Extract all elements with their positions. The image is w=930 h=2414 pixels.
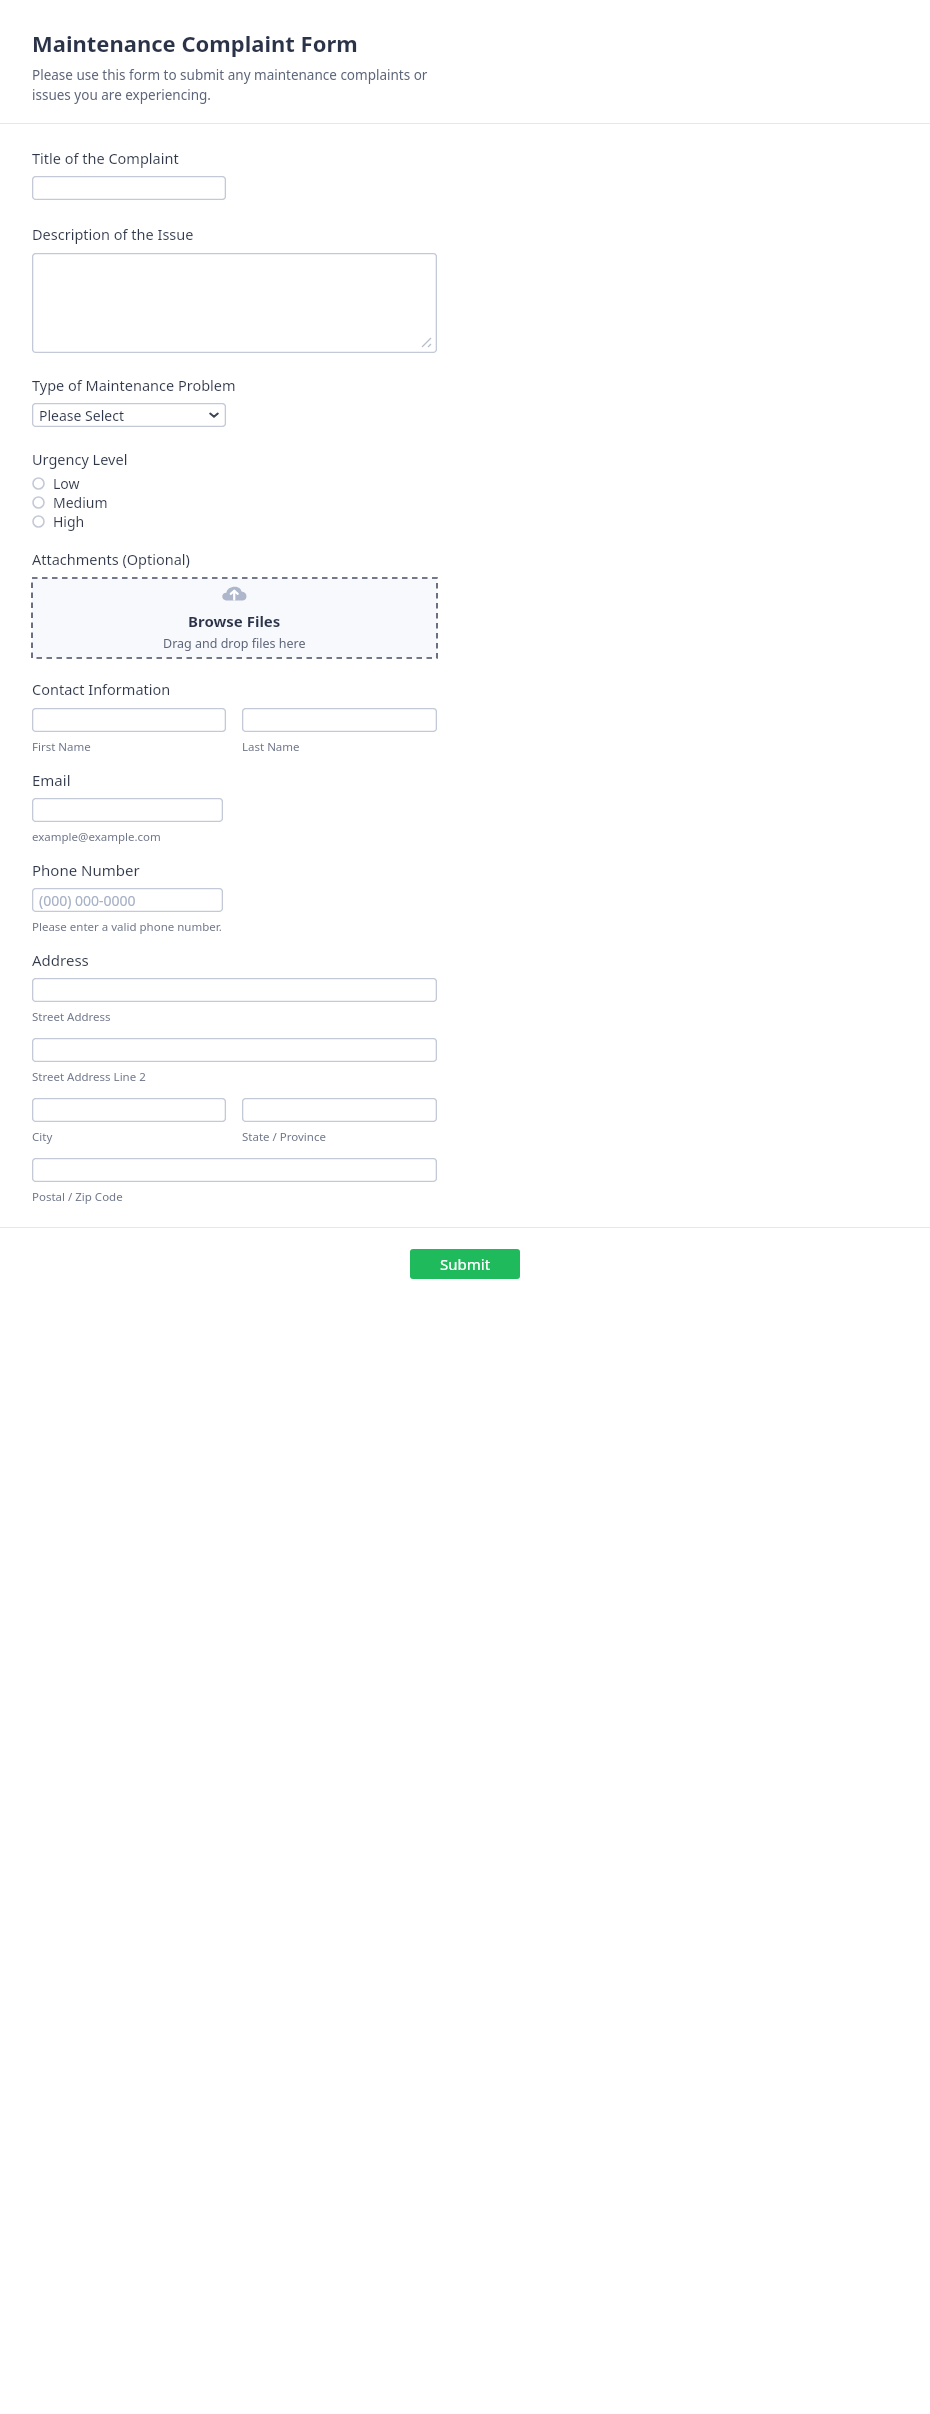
button[interactable]	[32, 1098, 226, 1122]
staticText: Please Select	[39, 406, 124, 425]
staticText: Please use this form to submit any maint…	[32, 66, 442, 104]
staticText: Last Name	[242, 739, 300, 755]
button[interactable]	[32, 798, 223, 822]
staticText: Medium	[53, 493, 108, 512]
staticText: Phone Number	[32, 860, 140, 880]
staticText: Type of Maintenance Problem	[32, 375, 236, 395]
staticText: Description of the Issue	[32, 224, 194, 244]
staticText: Postal / Zip Code	[32, 1189, 123, 1205]
button[interactable]	[32, 1158, 437, 1182]
button[interactable]	[32, 176, 226, 200]
button[interactable]	[32, 978, 437, 1002]
staticText: Contact Information	[32, 679, 171, 699]
staticText: (000) 000-0000	[39, 891, 136, 910]
staticText: Urgency Level	[32, 449, 128, 469]
staticText: Address	[32, 950, 89, 970]
staticText: High	[53, 512, 85, 531]
staticText: Street Address Line 2	[32, 1069, 146, 1085]
staticText: Low	[53, 474, 80, 493]
button[interactable]	[32, 708, 226, 732]
staticText: Street Address	[32, 1009, 111, 1025]
staticText: First Name	[32, 739, 91, 755]
staticText: Title of the Complaint	[32, 148, 179, 168]
button[interactable]	[242, 1098, 437, 1122]
button[interactable]	[242, 708, 437, 732]
staticText: Attachments (Optional)	[32, 549, 190, 569]
staticText: Maintenance Complaint Form	[32, 28, 358, 58]
staticText: example@example.com	[32, 829, 161, 845]
button[interactable]: Please Select	[32, 403, 226, 427]
button[interactable]	[32, 1038, 437, 1062]
staticText: City	[32, 1129, 53, 1145]
button[interactable]: Browse Files	[32, 578, 437, 658]
staticText: Browse Files	[188, 611, 281, 631]
staticText: Drag and drop files here	[163, 635, 306, 652]
staticText: Please enter a valid phone number.	[32, 919, 222, 935]
staticText: Submit	[440, 1254, 491, 1274]
button[interactable]: (000) 000-0000	[32, 888, 223, 912]
staticText: Email	[32, 770, 71, 790]
staticText: State / Province	[242, 1129, 326, 1145]
button[interactable]	[32, 253, 437, 353]
button[interactable]: Medium	[32, 493, 902, 512]
button[interactable]: Low	[32, 474, 902, 493]
button[interactable]: Submit	[410, 1249, 520, 1279]
button[interactable]: High	[32, 512, 902, 531]
